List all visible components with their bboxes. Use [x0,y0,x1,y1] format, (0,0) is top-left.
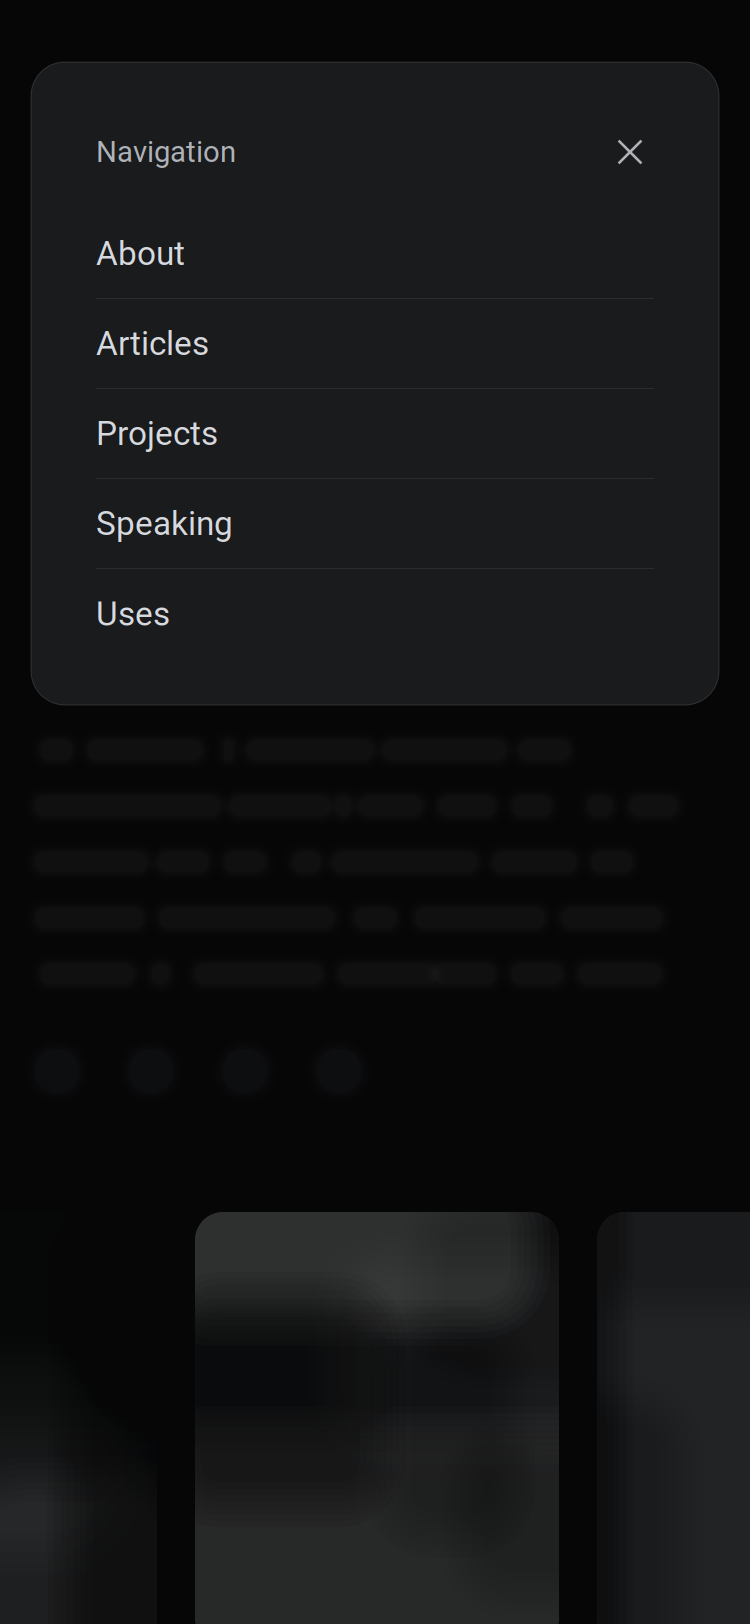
staticText: Projects [96,414,218,453]
button[interactable]: Speaking [96,479,654,569]
staticText: Navigation [96,135,236,169]
button[interactable]: Uses [96,569,654,659]
staticText: About [96,234,185,273]
button[interactable]: Projects [96,389,654,479]
staticText: Uses [96,594,170,634]
staticText: Speaking [96,504,233,543]
button[interactable]: About [96,209,654,299]
staticText: Articles [96,324,209,363]
button[interactable]: Articles [96,299,654,389]
button[interactable]: Close navigation [606,130,654,174]
